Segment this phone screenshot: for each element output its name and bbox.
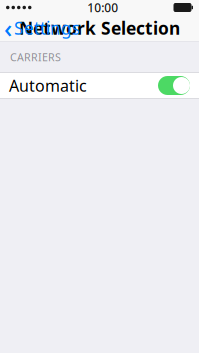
button[interactable]: ‹	[0, 8, 80, 48]
button[interactable]: Automatic	[0, 73, 199, 98]
staticText: 10:00	[87, 0, 118, 15]
staticText: Settings	[14, 16, 80, 39]
staticText: ‹	[4, 11, 12, 45]
staticText: Network Selection	[19, 16, 180, 39]
staticText: Automatic	[9, 75, 87, 96]
staticText: CARRIERS	[10, 50, 61, 64]
